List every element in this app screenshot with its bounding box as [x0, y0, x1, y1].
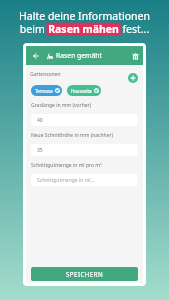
staticText: SPEICHERN	[66, 270, 104, 278]
button[interactable]: Terrasse	[31, 85, 62, 96]
staticText: Schnittgutmenge in ml pro m²	[31, 162, 102, 169]
staticText: Graslänge in mm (vorher)	[31, 102, 92, 109]
button[interactable]: Schnittgutmenge in ml...	[31, 174, 138, 186]
button[interactable]: Hausseite	[67, 85, 101, 96]
button[interactable]: Zurück	[30, 50, 41, 61]
staticText: Gartenzonen	[30, 71, 61, 78]
staticText: Rasen gemäht	[56, 51, 102, 60]
staticText: 40	[37, 117, 43, 124]
staticText: Hausseite	[71, 88, 92, 94]
staticText: Terrasse	[35, 88, 53, 94]
staticText: Neue Schnitthöhe in mm (nachher)	[31, 132, 114, 139]
button[interactable]: Zone hinzufügen	[128, 73, 138, 83]
staticText: 35	[37, 147, 43, 154]
staticText: Schnittgutmenge in ml...	[37, 177, 95, 184]
button[interactable]: 35	[31, 144, 138, 156]
button[interactable]: Löschen	[129, 50, 141, 62]
staticText: Halte deine Informationen beim Rasen mäh…	[4, 9, 165, 36]
button[interactable]: 40	[31, 114, 138, 126]
button[interactable]: SPEICHERN	[31, 267, 138, 281]
